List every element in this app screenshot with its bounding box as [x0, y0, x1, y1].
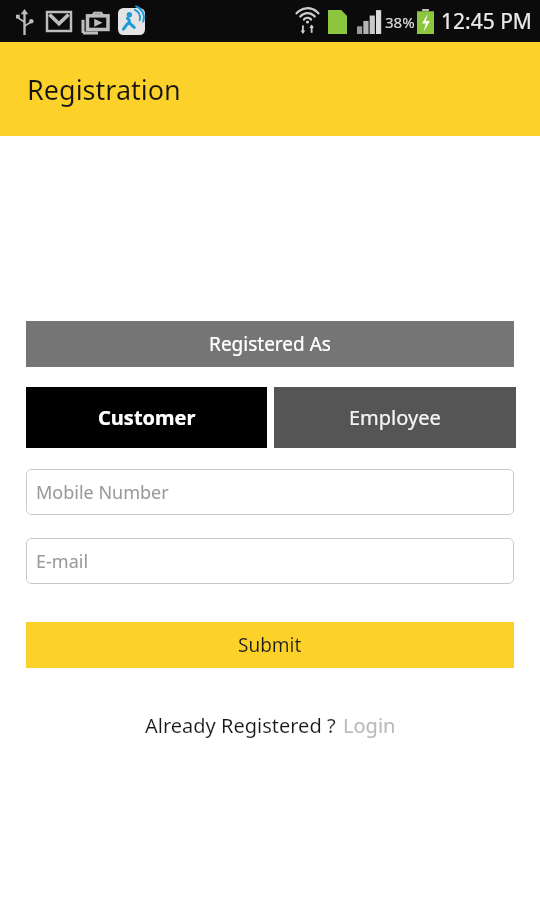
staticText: Registered As	[209, 331, 331, 357]
staticText: Customer	[98, 404, 196, 431]
staticText: Submit	[238, 632, 302, 658]
button[interactable]: Customer	[26, 387, 267, 448]
staticText: E-mail	[36, 549, 89, 574]
button[interactable]: Employee	[274, 387, 516, 448]
button[interactable]: Submit	[26, 622, 514, 668]
staticText: 12:45 PM	[441, 7, 532, 36]
staticText: Login	[343, 712, 396, 739]
staticText: Mobile Number	[36, 480, 169, 505]
button[interactable]: Registered As	[26, 321, 514, 367]
staticText: Registration	[27, 71, 181, 108]
staticText: Already Registered ?	[145, 712, 336, 739]
staticText: 38%	[385, 12, 415, 32]
button[interactable]: E-mail	[26, 538, 514, 584]
staticText: Employee	[349, 404, 441, 431]
button[interactable]: Mobile Number	[26, 469, 514, 515]
button[interactable]: Login	[343, 712, 396, 739]
